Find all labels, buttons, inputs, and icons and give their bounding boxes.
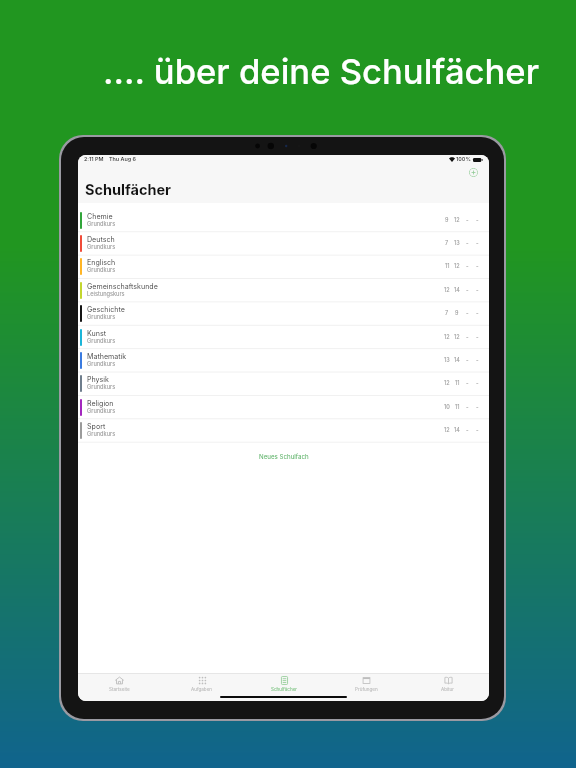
button[interactable]: Schulfächer [243,676,325,693]
staticText: 100% [456,156,471,163]
staticText: Deutsch [87,235,115,244]
staticText: - [466,357,469,364]
staticText: - [476,310,479,317]
staticText: Grundkurs [87,407,116,414]
staticText: Schulfächer [271,687,298,693]
staticText: 14 [454,357,460,364]
staticText: Prüfungen [355,687,378,693]
button[interactable]: Kunst [78,326,489,349]
staticText: - [466,380,469,387]
staticText: Leistungskurs [87,290,125,297]
staticText: - [466,427,469,434]
staticText: 12 [444,380,450,387]
staticText: Mathematik [87,352,127,361]
staticText: - [466,310,469,317]
staticText: Gemeinschaftskunde [87,282,158,291]
staticText: Grundkurs [87,430,116,437]
staticText: Aufgaben [191,687,213,693]
staticText: - [476,240,479,247]
staticText: 12 [444,427,450,434]
staticText: Schulfächer [85,181,172,199]
staticText: 12 [454,217,460,224]
staticText: - [466,287,469,294]
staticText: Grundkurs [87,313,116,320]
staticText: 14 [454,427,460,434]
staticText: 12 [454,263,460,270]
button[interactable]: Neues Schulfach hinzufügen [469,168,478,177]
staticText: 9 [445,217,449,224]
staticText: Grundkurs [87,243,116,250]
staticText: Grundkurs [87,220,116,227]
button[interactable]: Neues Schulfach [78,443,489,470]
button[interactable]: Aufgaben [161,676,243,693]
staticText: Startseite [109,687,130,693]
button[interactable]: Abitur [407,676,489,693]
staticText: Religion [87,399,114,408]
staticText: 11 [455,404,460,411]
staticText: - [476,404,479,411]
staticText: - [476,357,479,364]
button[interactable]: Englisch [78,255,489,278]
staticText: 7 [445,240,449,247]
staticText: Grundkurs [87,383,116,390]
staticText: Grundkurs [87,360,116,367]
staticText: - [476,427,479,434]
button[interactable]: Deutsch [78,232,489,255]
staticText: 12 [454,334,460,341]
staticText: - [476,380,479,387]
staticText: 9 [455,310,459,317]
staticText: Geschichte [87,305,125,314]
staticText: Abitur [441,687,455,693]
staticText: .... über deine Schulfächer [103,50,540,92]
button[interactable]: Gemeinschaftskunde [78,279,489,302]
button[interactable]: Physik [78,372,489,395]
staticText: 11 [445,263,450,270]
staticText: 13 [444,357,450,364]
staticText: 14 [454,287,460,294]
staticText: Neues Schulfach [259,453,309,461]
button[interactable]: Chemie [78,209,489,232]
staticText: Kunst [87,329,106,338]
staticText: Sport [87,422,106,431]
staticText: - [466,263,469,270]
button[interactable]: Geschichte [78,302,489,325]
staticText: 13 [454,240,460,247]
staticText: 11 [455,380,460,387]
staticText: - [476,334,479,341]
button[interactable]: Mathematik [78,349,489,372]
staticText: 12 [444,334,450,341]
staticText: 12 [444,287,450,294]
staticText: 2:11 PM [84,156,104,163]
button[interactable]: Sport [78,419,489,442]
button[interactable]: Religion [78,396,489,419]
staticText: Thu Aug 6 [109,156,136,163]
staticText: - [466,334,469,341]
staticText: - [466,240,469,247]
staticText: - [476,263,479,270]
staticText: - [476,217,479,224]
button[interactable]: Prüfungen [325,676,407,693]
staticText: Physik [87,375,109,384]
button[interactable]: Startseite [78,676,161,693]
staticText: - [466,404,469,411]
staticText: 10 [444,404,450,411]
staticText: - [476,287,479,294]
staticText: 7 [445,310,449,317]
staticText: Englisch [87,258,116,267]
staticText: Grundkurs [87,266,116,273]
staticText: - [466,217,469,224]
staticText: Grundkurs [87,337,116,344]
staticText: Chemie [87,212,113,221]
